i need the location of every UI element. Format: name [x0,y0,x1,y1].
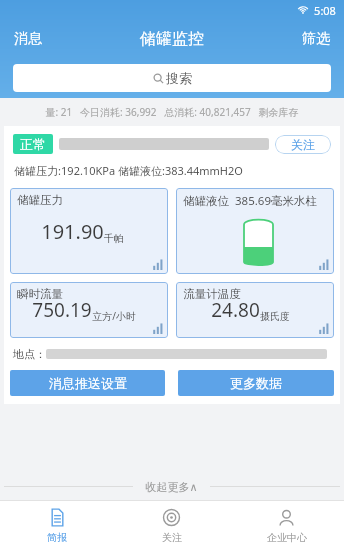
staticText: 关注 [291,137,315,152]
other: 简报 [48,508,67,527]
staticText: 储罐监控 [140,29,204,49]
other: 企业中心 [277,508,296,527]
button[interactable]: 瞬时流量 [10,282,168,338]
button[interactable]: 消息 [0,23,56,55]
other: 查看图表 [152,258,164,270]
button[interactable]: 关注 [275,135,331,154]
staticText: 储罐压力 [17,193,63,207]
staticText: 摄氏度 [260,310,290,323]
button[interactable]: 储罐压力 [10,188,168,274]
staticText: 更多数据 [230,375,282,391]
staticText: 流量计温度 [183,287,241,301]
staticText: 正常 [20,136,46,152]
staticText: 24.80 [211,297,260,323]
button[interactable]: 更多数据 [178,370,334,396]
button[interactable]: 搜索 [13,64,331,92]
staticText: 储罐压力:192.10KPa 储罐液位:383.44mmH2O [14,163,243,178]
button[interactable]: 简报 [0,501,114,550]
staticText: 瞬时流量 [17,287,63,301]
staticText: 43% [248,235,270,250]
staticText: 消息推送设置 [49,375,127,391]
staticText: 191.90 [41,218,104,245]
button[interactable]: 收起更多∧ [0,473,344,500]
staticText: 750.19 [32,297,92,323]
staticText: 企业中心 [267,531,307,544]
button[interactable]: 关注 [114,501,229,550]
staticText: 收起更多∧ [145,480,198,494]
button[interactable]: 筛选 [288,23,344,55]
staticText: 5:08 [314,3,336,18]
staticText: 量: 21 今日消耗: 36,992 总消耗: 40,821,457 剩余库存 [45,105,299,119]
staticText: 关注 [162,531,182,544]
staticText: 地点： [13,347,46,361]
staticText: 搜索 [166,70,192,86]
staticText: 立方/小时 [92,309,136,323]
staticText: 筛选 [302,30,330,48]
button[interactable]: 消息推送设置 [10,370,165,396]
other: 查看图表 [318,258,330,270]
staticText: 储罐液位 385.69毫米水柱 [183,193,317,209]
other: 关注 [162,508,181,527]
button[interactable]: 企业中心 [229,501,344,550]
button[interactable]: 流量计温度 [176,282,334,338]
other: 查看图表 [152,322,164,334]
staticText: 消息 [14,30,42,48]
staticText: 简报 [47,531,67,544]
button[interactable]: 储罐液位 385.69毫米水柱 [176,188,334,274]
staticText: 千帕 [104,232,124,245]
other: 查看图表 [318,322,330,334]
